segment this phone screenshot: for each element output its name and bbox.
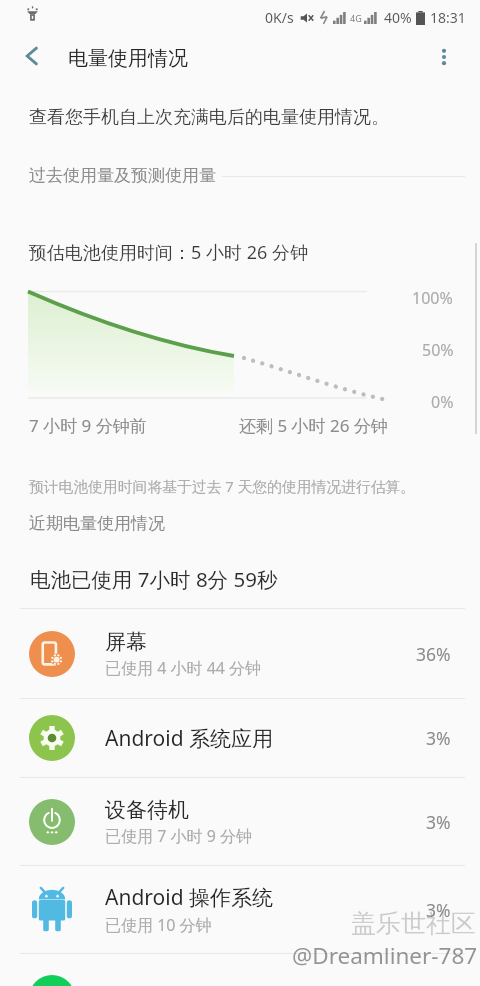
button[interactable]: 设备待机 — [0, 778, 480, 865]
staticText: 还剩 5 小时 26 分钟 — [239, 414, 388, 437]
staticText: Android 操作系统 — [105, 883, 274, 912]
staticText: 40% — [384, 8, 412, 27]
staticText: Android 系统应用 — [105, 724, 274, 753]
staticText: 3% — [426, 810, 451, 834]
staticText: 已使用 10 分钟 — [105, 914, 212, 936]
staticText: 36% — [416, 642, 451, 666]
button[interactable]: Android 操作系统 — [0, 866, 480, 953]
staticText: 电量使用情况 — [68, 46, 188, 71]
staticText: 3% — [426, 898, 451, 922]
button[interactable]: More options — [421, 34, 467, 80]
staticText: 预计电池使用时间将基于过去 7 天您的使用情况进行估算。 — [29, 476, 416, 496]
staticText: 近期电量使用情况 — [29, 513, 165, 534]
staticText: 3% — [426, 726, 451, 750]
staticText: 0K/s — [265, 8, 294, 27]
staticText: 100% — [412, 287, 453, 309]
staticText: 已使用 7 小时 9 分钟 — [105, 825, 252, 847]
button[interactable]: 微信 — [0, 954, 480, 986]
button[interactable]: 屏幕 — [0, 609, 480, 698]
staticText: 4G — [350, 12, 362, 24]
staticText: 过去使用量及预测使用量 — [29, 165, 216, 186]
staticText: 50% — [422, 339, 454, 361]
staticText: 0% — [431, 391, 454, 413]
staticText: @Dreamliner-787 — [292, 940, 478, 971]
staticText: 盖乐世社区 — [351, 908, 476, 939]
button[interactable]: Back — [9, 33, 55, 79]
button[interactable]: Android 系统应用 — [0, 699, 480, 777]
staticText: 设备待机 — [105, 797, 189, 823]
staticText: 已使用 4 小时 44 分钟 — [105, 657, 262, 679]
staticText: 7 小时 9 分钟前 — [29, 414, 147, 437]
staticText: 18:31 — [430, 8, 466, 27]
staticText: 电池已使用 7小时 8分 59秒 — [30, 565, 278, 593]
staticText: 查看您手机自上次充满电后的电量使用情况。 — [29, 106, 389, 129]
staticText: 屏幕 — [105, 629, 147, 655]
staticText: 预估电池使用时间：5 小时 26 分钟 — [29, 240, 308, 265]
